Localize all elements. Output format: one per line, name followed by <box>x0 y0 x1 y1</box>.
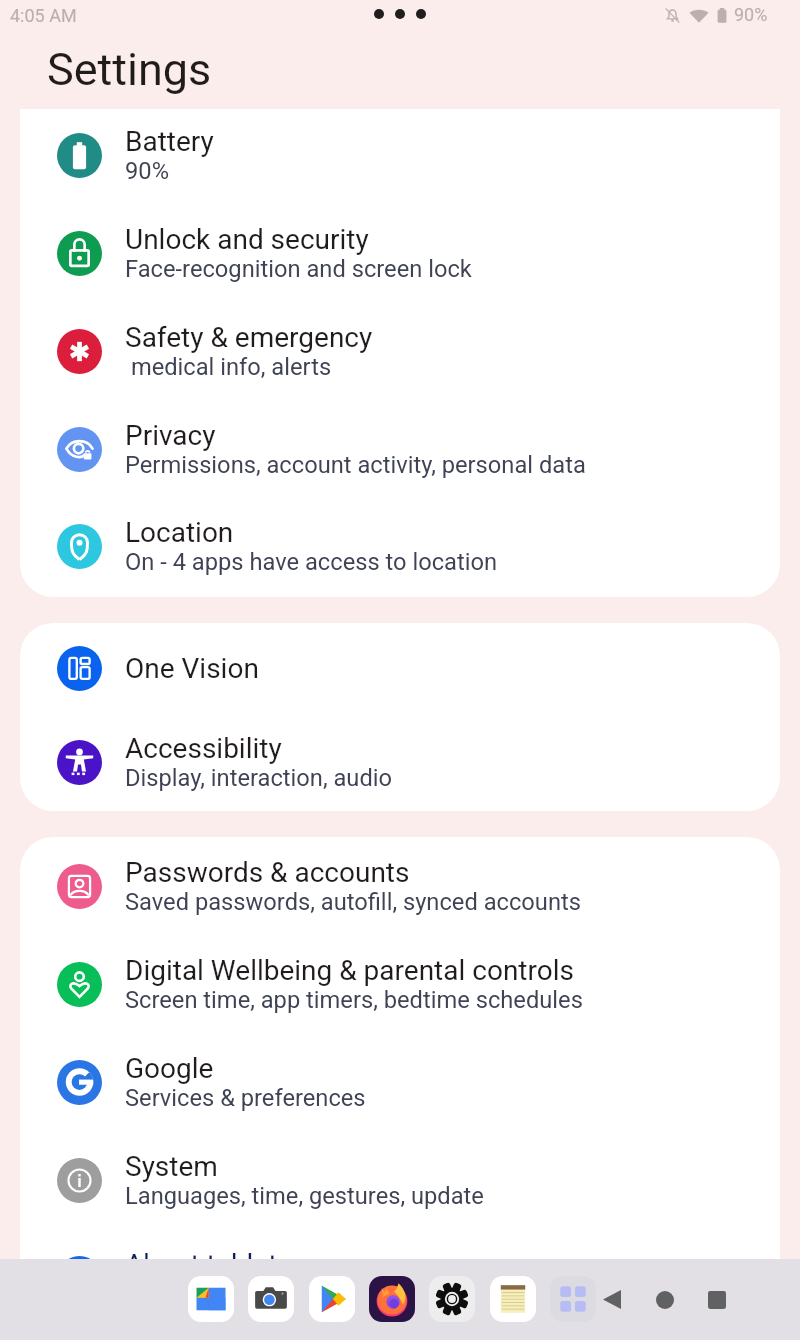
staticText: On - 4 apps have access to location <box>125 548 498 576</box>
staticText: Safety & emergency <box>125 321 373 354</box>
button[interactable]: Privacy <box>20 400 780 498</box>
button[interactable]: Play Store <box>309 1276 355 1322</box>
button[interactable]: Firefox <box>369 1276 415 1322</box>
button[interactable]: System <box>20 1131 780 1229</box>
staticText: Privacy <box>125 419 216 452</box>
staticText: Android 14 <box>125 1280 240 1308</box>
button[interactable]: About tablet <box>20 1229 780 1327</box>
button[interactable]: Passwords & accounts <box>20 837 780 935</box>
button[interactable]: Settings <box>429 1276 475 1322</box>
button[interactable]: Unlock and security <box>20 204 780 302</box>
button[interactable]: Digital Wellbeing & parental controls <box>20 935 780 1033</box>
button[interactable]: Google <box>20 1033 780 1131</box>
staticText: Display, interaction, audio <box>125 764 393 792</box>
staticText: Google <box>125 1052 214 1085</box>
button[interactable]: Accessibility <box>20 713 780 811</box>
button[interactable]: Files <box>188 1276 234 1322</box>
staticText: One Vision <box>125 652 259 685</box>
staticText: 90% <box>125 157 169 185</box>
staticText: medical info, alerts <box>125 353 332 381</box>
button[interactable]: Back <box>592 1280 631 1319</box>
staticText: Saved passwords, autofill, synced accoun… <box>125 888 581 916</box>
staticText: Unlock and security <box>125 223 369 256</box>
staticText: Location <box>125 516 234 549</box>
staticText: Screen time, app timers, bedtime schedul… <box>125 986 583 1014</box>
button[interactable]: Notes <box>490 1276 536 1322</box>
button[interactable]: Location <box>20 498 780 594</box>
staticText: Services & preferences <box>125 1084 366 1112</box>
button[interactable]: Camera <box>248 1276 294 1322</box>
button[interactable]: Home <box>645 1280 684 1319</box>
staticText: Battery <box>125 125 214 158</box>
staticText: Settings <box>47 43 212 96</box>
staticText: System <box>125 1150 218 1183</box>
button[interactable]: Battery <box>20 109 780 204</box>
staticText: Permissions, account activity, personal … <box>125 451 586 479</box>
staticText: 4:05 AM <box>10 5 77 26</box>
staticText: Accessibility <box>125 732 282 765</box>
staticText: About tablet <box>125 1248 278 1281</box>
button[interactable]: One Vision <box>20 623 780 713</box>
staticText: 90% <box>734 4 768 25</box>
button[interactable]: All apps <box>550 1276 596 1322</box>
button[interactable]: Recent apps <box>697 1280 736 1319</box>
staticText: Languages, time, gestures, update <box>125 1182 484 1210</box>
staticText: Passwords & accounts <box>125 856 410 889</box>
staticText: Digital Wellbeing & parental controls <box>125 954 574 987</box>
staticText: Face-recognition and screen lock <box>125 255 472 283</box>
button[interactable]: Safety & emergency <box>20 302 780 400</box>
